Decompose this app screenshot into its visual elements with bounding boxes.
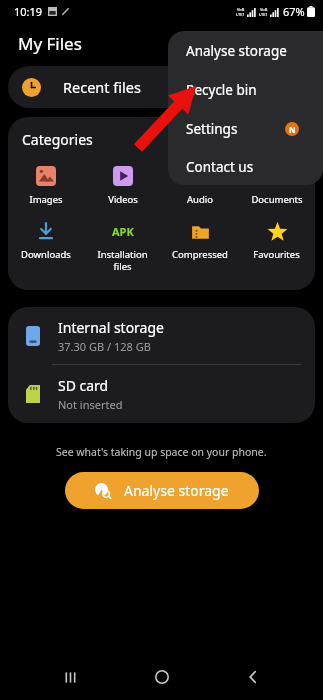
button[interactable]: Audio (161, 163, 238, 206)
staticText: Images (29, 193, 63, 206)
staticText: Documents (251, 193, 303, 206)
staticText: Audio (187, 193, 213, 206)
button[interactable]: Contact us (168, 148, 323, 185)
button[interactable]: Downloads (8, 218, 84, 261)
button[interactable]: Compressed (161, 218, 238, 261)
staticText: Analyse storage (186, 42, 287, 60)
staticText: Installation files (97, 248, 148, 272)
staticText: Internal storage (58, 318, 164, 337)
button[interactable]: Favourites (238, 218, 315, 261)
staticText: Favourites (253, 248, 300, 261)
button[interactable]: Videos (84, 163, 161, 206)
staticText: 10:19 (14, 4, 43, 19)
button[interactable]: Recent apps (48, 655, 92, 699)
staticText: LTE1 (259, 12, 268, 17)
button[interactable]: Analyse storage (65, 472, 259, 509)
button[interactable]: SD card (8, 365, 315, 423)
staticText: Recent files (63, 77, 141, 97)
staticText: Downloads (21, 248, 71, 261)
staticText: My Files (18, 32, 82, 55)
staticText: Analyse storage (124, 481, 229, 500)
button[interactable]: Documents (238, 163, 315, 206)
staticText: See what's taking up space on your phone… (56, 445, 267, 459)
button[interactable]: Home (140, 655, 184, 699)
button[interactable]: Settings (168, 109, 323, 148)
staticText: Categories (22, 130, 93, 149)
staticText: Compressed (172, 248, 228, 261)
button[interactable]: Recycle bin (168, 70, 323, 109)
staticText: LTE1 (236, 12, 245, 17)
staticText: 67% (283, 4, 305, 19)
staticText: APK (112, 224, 134, 239)
staticText: Contact us (186, 158, 254, 176)
button[interactable]: Images (8, 163, 84, 206)
staticText: VoB (260, 7, 268, 12)
staticText: N (289, 124, 296, 135)
button[interactable]: Internal storage (8, 307, 315, 364)
staticText: Videos (108, 193, 138, 206)
staticText: VoB (237, 7, 245, 12)
staticText: 37.30 GB / 128 GB (58, 339, 151, 354)
button[interactable]: Analyse storage (168, 31, 323, 70)
staticText: Not inserted (58, 397, 123, 412)
button[interactable]: Recent files (8, 66, 315, 108)
staticText: Settings (186, 120, 238, 138)
staticText: SD card (58, 376, 109, 395)
button[interactable]: APK (84, 218, 161, 272)
button[interactable]: Back (231, 655, 275, 699)
staticText: Recycle bin (186, 81, 257, 99)
